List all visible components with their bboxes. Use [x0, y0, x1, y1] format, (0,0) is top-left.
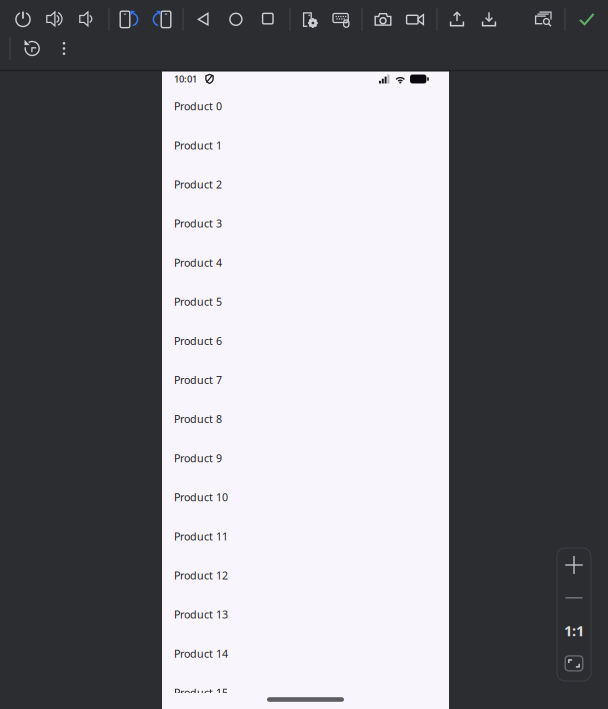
staticText: Product 10 — [174, 490, 228, 504]
button[interactable]: Product 1 — [162, 126, 449, 165]
button[interactable]: Product 14 — [162, 634, 449, 673]
staticText: Product 5 — [174, 295, 222, 309]
staticText: Product 6 — [174, 334, 222, 348]
staticText: Product 14 — [174, 646, 228, 661]
staticText: Product 2 — [174, 177, 222, 191]
button[interactable]: Product 4 — [162, 243, 449, 282]
button[interactable]: Zoom to actual size — [557, 614, 591, 647]
staticText: Product 4 — [174, 255, 222, 270]
staticText: 1:1 — [564, 621, 584, 640]
staticText: Product 7 — [174, 373, 222, 387]
button[interactable]: Overview — [254, 5, 282, 33]
button[interactable]: Rotate right — [148, 5, 176, 33]
button[interactable]: Hardware input — [328, 5, 356, 33]
button[interactable]: Accept — [573, 5, 601, 33]
button[interactable]: More options — [50, 34, 78, 62]
button[interactable]: Product 3 — [162, 204, 449, 243]
button[interactable]: Product 0 — [162, 87, 449, 126]
button[interactable]: Volume up — [41, 5, 69, 33]
button[interactable]: Product 7 — [162, 360, 449, 399]
staticText: Product 15 — [174, 686, 228, 700]
button[interactable]: Rotate left — [115, 5, 143, 33]
staticText: Product 8 — [174, 412, 222, 426]
button[interactable]: Download from device — [475, 5, 503, 33]
button[interactable]: Product 15 — [162, 673, 449, 709]
staticText: Product 13 — [174, 607, 228, 622]
staticText: Product 11 — [174, 529, 228, 543]
button[interactable]: Device settings — [296, 5, 324, 33]
button[interactable]: Product 9 — [162, 438, 449, 478]
button[interactable]: Product 8 — [162, 399, 449, 438]
staticText: Product 9 — [174, 451, 222, 465]
button[interactable]: Product 10 — [162, 478, 449, 517]
staticText: Product 12 — [174, 568, 228, 582]
button[interactable]: Take screenshot — [369, 5, 397, 33]
staticText: Product 1 — [174, 138, 222, 152]
button[interactable]: Product 12 — [162, 556, 449, 595]
button[interactable]: Home — [222, 5, 250, 33]
button[interactable]: Back — [190, 5, 218, 33]
button[interactable]: Product 2 — [162, 165, 449, 204]
button[interactable]: Product 5 — [162, 282, 449, 321]
button[interactable]: Volume down — [74, 5, 102, 33]
staticText: 10:01 — [174, 73, 197, 85]
button[interactable]: Snapshots — [18, 34, 46, 62]
button[interactable]: Zoom in — [557, 549, 591, 581]
button[interactable]: Fit to window — [557, 647, 591, 680]
button[interactable]: Product 13 — [162, 595, 449, 634]
button[interactable]: Record screen — [401, 5, 429, 33]
button[interactable]: Upload to device — [443, 5, 471, 33]
staticText: Product 3 — [174, 216, 222, 231]
button[interactable]: Layout inspector — [530, 5, 558, 33]
button[interactable]: Product 11 — [162, 517, 449, 556]
button[interactable]: Power — [9, 5, 37, 33]
staticText: Product 0 — [174, 99, 222, 113]
button[interactable]: Product 6 — [162, 321, 449, 360]
button[interactable]: Zoom out — [557, 581, 591, 614]
